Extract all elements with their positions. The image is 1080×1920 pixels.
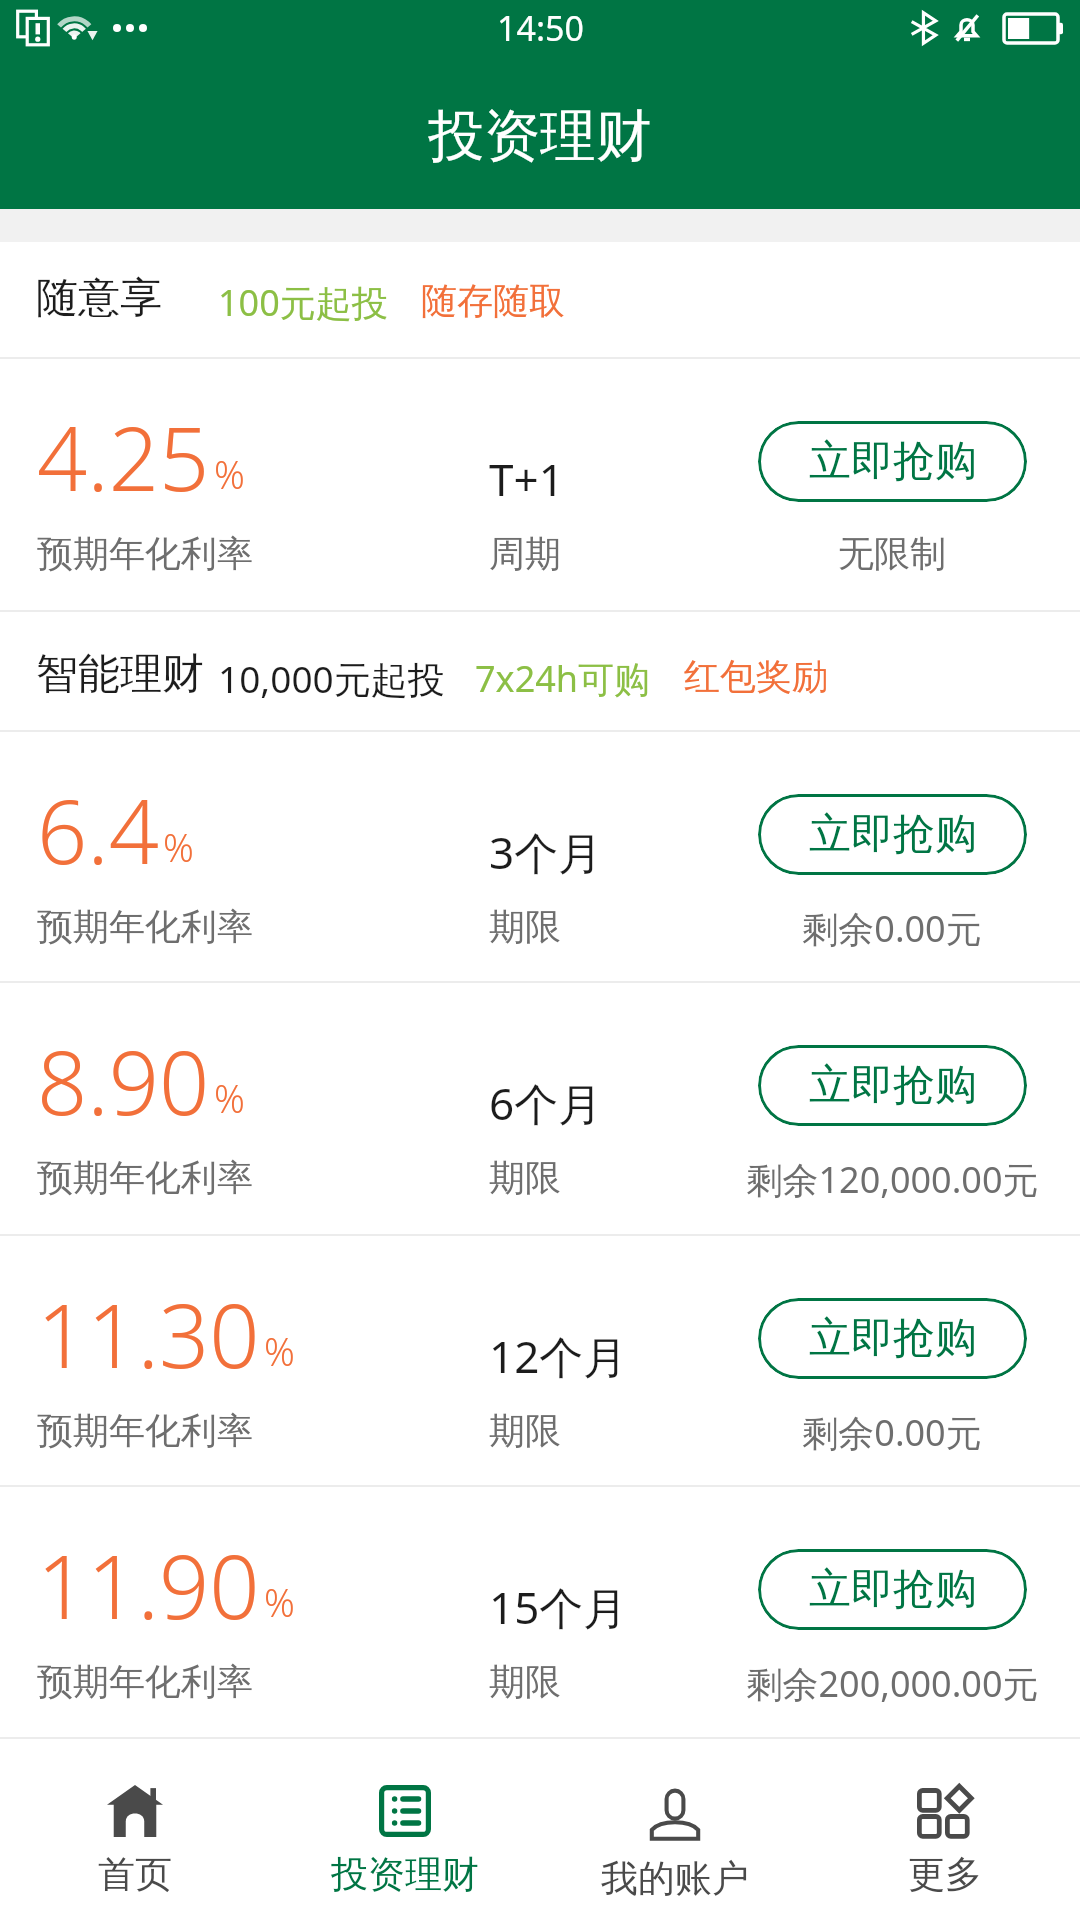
button[interactable]: 立即抢购 <box>758 1549 1027 1630</box>
staticText: 7x24h可购 <box>475 654 651 703</box>
staticText: 14:50 <box>497 5 584 51</box>
staticText: 预期年化利率 <box>37 1155 253 1200</box>
button[interactable]: 立即抢购 <box>758 1298 1027 1379</box>
staticText: 3个月 <box>489 822 603 882</box>
staticText: T+1 <box>489 449 564 509</box>
staticText: 预期年化利率 <box>37 531 253 576</box>
staticText: 红包奖励 <box>684 654 828 699</box>
staticText: 立即抢购 <box>809 435 977 488</box>
staticText: 12个月 <box>489 1326 628 1386</box>
staticText: 100元起投 <box>218 278 388 327</box>
staticText: 预期年化利率 <box>37 1408 253 1453</box>
staticText: 随意享 <box>36 272 162 325</box>
staticText: 4.25 <box>37 397 210 517</box>
staticText: 投资理财 <box>428 101 652 172</box>
staticText: % <box>163 821 194 873</box>
button[interactable]: 我的账户 <box>540 1739 810 1920</box>
staticText: 期限 <box>489 1659 561 1704</box>
staticText: 立即抢购 <box>809 1312 977 1365</box>
staticText: 剩余120,000.00元 <box>746 1155 1039 1204</box>
staticText: 预期年化利率 <box>37 1659 253 1704</box>
button[interactable]: 立即抢购 <box>758 794 1027 875</box>
button[interactable]: 8.90 <box>0 983 1080 1234</box>
button[interactable]: 首页 <box>0 1739 270 1920</box>
staticText: 预期年化利率 <box>37 904 253 949</box>
staticText: 周期 <box>489 531 561 576</box>
staticText: 6.4 <box>37 770 159 890</box>
staticText: 10,000元起投 <box>218 653 445 704</box>
staticText: 期限 <box>489 1408 561 1453</box>
staticText: % <box>214 448 245 500</box>
staticText: 立即抢购 <box>809 1059 977 1112</box>
staticText: % <box>264 1325 295 1377</box>
button[interactable]: 智能理财 <box>0 612 1080 730</box>
staticText: 剩余200,000.00元 <box>746 1659 1039 1708</box>
staticText: 智能理财 <box>36 648 204 701</box>
staticText: 11.90 <box>37 1525 260 1645</box>
staticText: 11.30 <box>37 1274 260 1394</box>
button[interactable]: 投资理财 <box>270 1739 540 1920</box>
staticText: 期限 <box>489 904 561 949</box>
button[interactable]: 更多 <box>810 1739 1080 1920</box>
button[interactable]: 4.25 <box>0 359 1080 610</box>
staticText: 剩余0.00元 <box>802 904 982 953</box>
staticText: % <box>214 1072 245 1124</box>
staticText: 6个月 <box>489 1073 603 1133</box>
staticText: 剩余0.00元 <box>802 1408 982 1457</box>
staticText: 首页 <box>98 1851 172 1898</box>
staticText: 更多 <box>908 1851 982 1898</box>
staticText: % <box>264 1576 295 1628</box>
button[interactable]: 立即抢购 <box>758 1045 1027 1126</box>
staticText: 立即抢购 <box>809 808 977 861</box>
staticText: 投资理财 <box>331 1851 479 1898</box>
staticText: 立即抢购 <box>809 1563 977 1616</box>
staticText: 无限制 <box>838 531 946 576</box>
button[interactable]: 6.4 <box>0 732 1080 981</box>
button[interactable]: 11.30 <box>0 1236 1080 1485</box>
staticText: 15个月 <box>489 1577 628 1637</box>
staticText: 随存随取 <box>421 278 565 323</box>
staticText: 我的账户 <box>601 1855 749 1902</box>
staticText: 期限 <box>489 1155 561 1200</box>
staticText: 8.90 <box>37 1021 210 1141</box>
button[interactable]: 随意享 <box>0 242 1080 357</box>
button[interactable]: 11.90 <box>0 1487 1080 1737</box>
button[interactable]: 立即抢购 <box>758 421 1027 502</box>
